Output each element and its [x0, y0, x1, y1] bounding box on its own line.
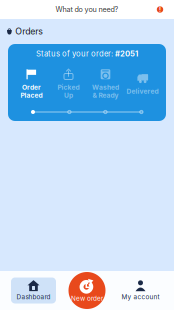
staticText: #2051 — [115, 49, 138, 58]
staticText: My account — [121, 293, 159, 301]
staticText: Picked — [57, 83, 79, 91]
staticText: What do you need? — [55, 5, 118, 14]
staticText: Orders — [15, 26, 43, 37]
staticText: Delivered — [126, 87, 158, 95]
staticText: & Ready — [92, 91, 118, 99]
button[interactable]: My account — [118, 277, 163, 303]
staticText: New order — [71, 295, 103, 302]
staticText: Placed — [20, 91, 42, 99]
staticText: Dashboard — [16, 293, 50, 301]
button[interactable]: Notifications — [153, 2, 167, 16]
button[interactable]: Dashboard — [11, 277, 56, 303]
staticText: ! — [159, 6, 161, 13]
button[interactable]: New order — [68, 272, 105, 309]
staticText: Up — [64, 91, 73, 99]
staticText: Order — [22, 83, 41, 91]
staticText: Status of your order: — [36, 49, 115, 58]
staticText: Washed — [92, 83, 119, 91]
